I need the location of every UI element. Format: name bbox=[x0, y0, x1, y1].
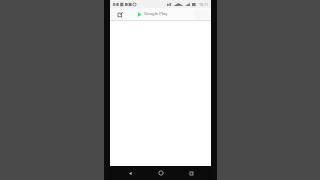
staticText: Google Play bbox=[144, 11, 168, 17]
staticText: 10:11 bbox=[199, 2, 208, 7]
button[interactable]: Back bbox=[119, 166, 141, 180]
button[interactable]: Google Play bbox=[136, 11, 169, 17]
button[interactable]: Share bbox=[115, 9, 125, 19]
button[interactable]: Home bbox=[150, 166, 172, 180]
button[interactable]: Recent apps bbox=[180, 166, 202, 180]
